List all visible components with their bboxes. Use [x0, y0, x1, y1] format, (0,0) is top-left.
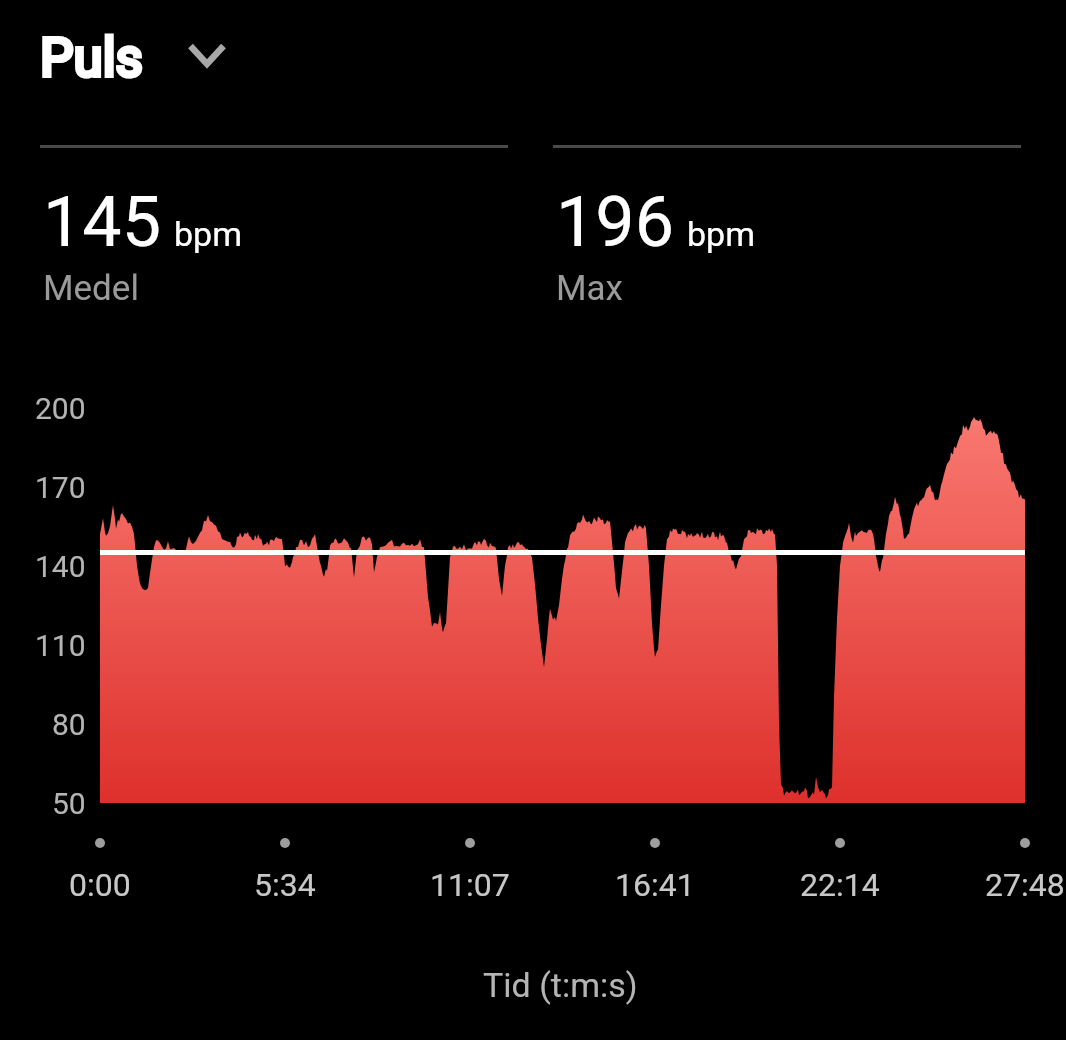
- staticText: Puls: [40, 27, 143, 89]
- staticText: Medel: [43, 268, 139, 309]
- staticText: 50: [52, 786, 86, 821]
- staticText: 200: [35, 391, 86, 426]
- staticText: 140: [35, 549, 86, 584]
- staticText: bpm: [687, 214, 755, 254]
- staticText: Puls: [40, 27, 143, 89]
- staticText: 11:07: [430, 866, 510, 904]
- staticText: 22:14: [800, 866, 880, 904]
- staticText: Tid (t:m:s): [483, 965, 638, 1005]
- staticText: bpm: [174, 214, 242, 254]
- staticText: 196: [556, 181, 675, 263]
- staticText: 0:00: [69, 866, 131, 904]
- staticText: 80: [52, 707, 86, 742]
- staticText: 170: [35, 470, 86, 505]
- button[interactable]: Puls: [40, 27, 225, 89]
- staticText: 27:48: [985, 866, 1065, 904]
- staticText: 5:34: [254, 866, 316, 904]
- staticText: 16:41: [615, 866, 695, 904]
- staticText: Max: [556, 268, 623, 309]
- staticText: 110: [35, 628, 86, 663]
- staticText: 145: [43, 181, 162, 263]
